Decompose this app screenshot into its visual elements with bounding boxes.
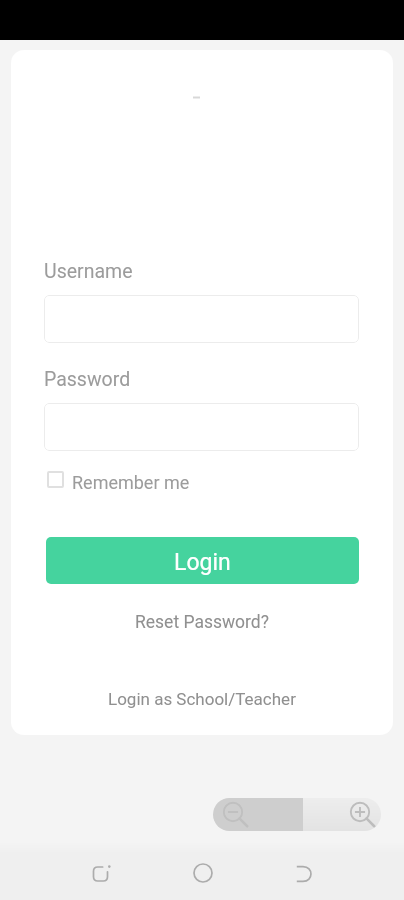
button[interactable]	[44, 403, 359, 451]
button[interactable]: Zoom in	[303, 798, 381, 831]
button[interactable]: Reset Password?	[135, 612, 270, 633]
staticText: Remember me	[72, 472, 190, 493]
staticText: Login	[174, 549, 231, 576]
button[interactable]: Recent apps	[69, 847, 135, 900]
button[interactable]: Home	[170, 846, 236, 900]
button[interactable]: Back	[272, 847, 338, 900]
staticText: Username	[44, 260, 133, 283]
staticText: Password	[44, 368, 131, 391]
button[interactable]: Remember me	[47, 468, 182, 490]
button[interactable]: Login as School/Teacher	[108, 689, 296, 709]
button[interactable]: Zoom out	[213, 798, 303, 831]
button[interactable]	[44, 295, 359, 343]
button[interactable]: Login	[46, 537, 359, 584]
